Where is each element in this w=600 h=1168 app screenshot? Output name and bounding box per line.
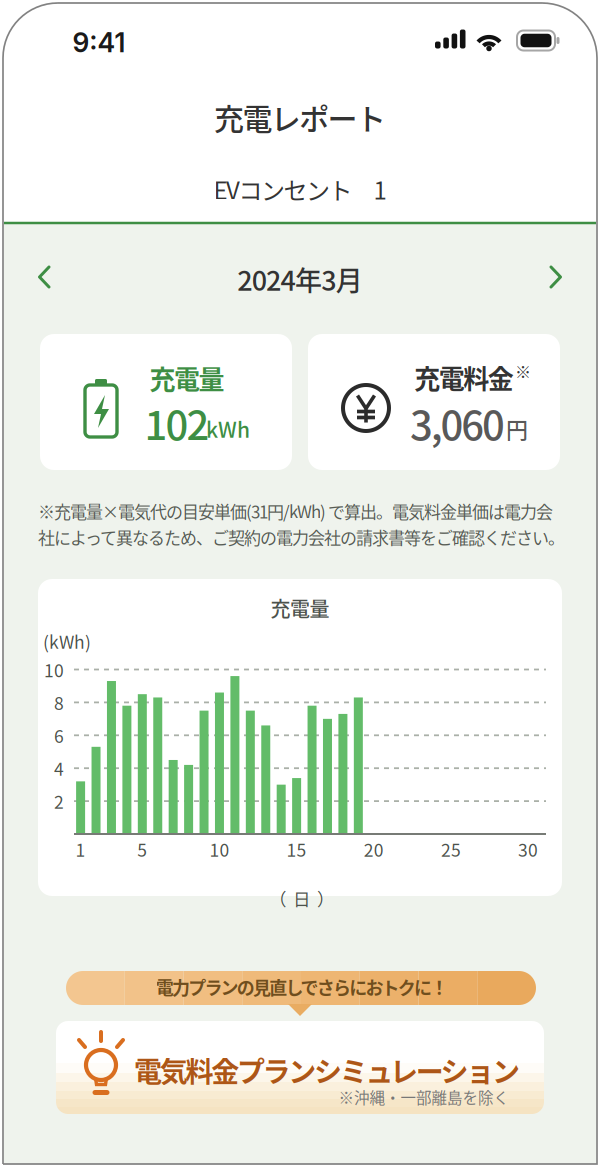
staticText: 2: [54, 788, 64, 814]
staticText: 1: [76, 836, 86, 862]
staticText: 8: [54, 690, 64, 715]
staticText: （日）: [269, 885, 335, 911]
staticText: 10: [44, 657, 64, 682]
staticText: ※: [515, 359, 531, 383]
staticText: 充電量: [149, 359, 224, 397]
staticText: 電気料金プランシミュレーション: [134, 1050, 520, 1090]
staticText: EVコンセント 1: [213, 172, 386, 206]
staticText: (kWh): [43, 628, 91, 654]
staticText: 9:41: [72, 26, 125, 59]
staticText: 社によって異なるため、ご契約の電力会社の請求書等をご確認ください。: [38, 525, 565, 549]
staticText: 102: [144, 393, 209, 451]
staticText: 4: [54, 755, 64, 781]
button[interactable]: EVコンセント 1: [213, 172, 386, 206]
staticText: kWh: [206, 413, 250, 444]
button[interactable]: 前の月: [36, 263, 52, 291]
staticText: 6: [54, 723, 64, 748]
staticText: 充電レポート: [214, 95, 386, 139]
button[interactable]: 電気料金プランシミュレーション: [56, 1021, 544, 1114]
staticText: 円: [506, 413, 528, 444]
staticText: 30: [518, 836, 538, 862]
staticText: 5: [137, 836, 147, 862]
staticText: ※充電量×電気代の目安単価(31円/kWh) で算出。電気料金単価は電力会: [38, 499, 553, 523]
staticText: 2024年3月: [237, 259, 363, 299]
staticText: 電力プランの見直しでさらにおトクに！: [156, 974, 448, 1000]
staticText: 25: [441, 836, 461, 862]
staticText: ※沖縄・一部離島を除く: [338, 1086, 509, 1108]
button[interactable]: 次の月: [548, 263, 564, 291]
staticText: 20: [364, 836, 384, 862]
staticText: 15: [287, 836, 307, 862]
staticText: 充電料金: [414, 359, 514, 396]
staticText: 充電量: [270, 593, 330, 622]
staticText: 3,060: [410, 393, 505, 451]
staticText: 10: [209, 836, 229, 862]
